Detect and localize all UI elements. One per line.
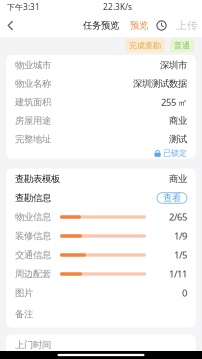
staticText: 物业名称 bbox=[15, 78, 51, 89]
staticText: 查看 bbox=[163, 192, 181, 204]
staticText: 商业 bbox=[169, 115, 187, 126]
staticText: 周边配套 bbox=[15, 268, 51, 280]
button[interactable]: 历史记录 bbox=[155, 14, 168, 37]
staticText: 建筑面积 bbox=[15, 96, 51, 108]
staticText: 255 ㎡ bbox=[161, 96, 187, 108]
staticText: 测试 bbox=[169, 133, 187, 145]
staticText: 下午3:31 bbox=[7, 2, 40, 12]
button[interactable]: 返回 bbox=[7, 14, 25, 37]
staticText: 1/9 bbox=[174, 230, 187, 242]
staticText: 物业城市 bbox=[15, 59, 51, 71]
staticText: 查勘表模板 bbox=[15, 173, 60, 185]
staticText: 深圳市 bbox=[160, 59, 187, 71]
staticText: 房屋用途 bbox=[15, 115, 51, 126]
staticText: 普通 bbox=[174, 41, 190, 50]
staticText: 预览 bbox=[130, 20, 148, 31]
staticText: 2/65 bbox=[169, 211, 187, 223]
staticText: 物业信息 bbox=[15, 211, 51, 223]
staticText: 任务预览 bbox=[83, 20, 119, 31]
staticText: 交通信息 bbox=[15, 249, 51, 261]
staticText: 已锁定 bbox=[163, 148, 187, 158]
button[interactable]: 上传 bbox=[176, 14, 198, 37]
staticText: 0 bbox=[182, 287, 187, 299]
staticText: 商业 bbox=[169, 173, 187, 185]
staticText: 22.3K/s bbox=[103, 2, 132, 12]
button[interactable]: 查看 bbox=[157, 193, 187, 203]
staticText: 图片 bbox=[15, 287, 33, 299]
button[interactable]: 预览 bbox=[130, 14, 148, 37]
staticText: 1/5 bbox=[174, 249, 187, 261]
staticText: 完成查勘 bbox=[129, 41, 161, 50]
staticText: 1/11 bbox=[169, 268, 187, 280]
staticText: 装修信息 bbox=[15, 230, 51, 242]
staticText: 完整地址 bbox=[15, 133, 51, 145]
staticText: 上门时间 bbox=[15, 339, 51, 351]
staticText: 深圳测试数据 bbox=[133, 78, 187, 89]
staticText: 上传 bbox=[176, 19, 198, 32]
staticText: 备注 bbox=[15, 308, 33, 320]
staticText: 查勘信息 bbox=[15, 192, 51, 204]
